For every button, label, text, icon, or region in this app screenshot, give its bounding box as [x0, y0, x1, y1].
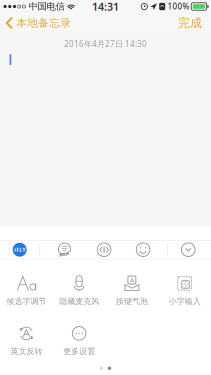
button[interactable]: 小: [158, 259, 211, 309]
staticText: 英文反转: [10, 346, 42, 356]
staticText: 100%: [167, 1, 189, 12]
button[interactable]: 消息: [40, 241, 89, 259]
button[interactable]: 候选字调节: [0, 259, 53, 309]
staticText: A: [130, 276, 134, 284]
button[interactable]: 隐藏麦克风: [53, 259, 106, 309]
button[interactable]: 讯飞输入法: [0, 241, 39, 259]
staticText: 14:31: [92, 0, 119, 14]
button[interactable]: 更多设置: [53, 309, 106, 359]
staticText: 按键气泡: [116, 296, 148, 306]
button[interactable]: 光标移动: [89, 241, 119, 259]
staticText: 完成: [178, 16, 202, 30]
button[interactable]: 本地备忘录: [0, 13, 71, 33]
staticText: 本地备忘录: [16, 16, 71, 29]
button[interactable]: A: [105, 259, 158, 309]
staticText: 小字输入: [169, 296, 201, 306]
button[interactable]: 英文反转: [0, 309, 53, 359]
staticText: 2016年4月27日 14:30: [64, 38, 147, 49]
staticText: 更多设置: [63, 346, 95, 356]
staticText: 中国电信: [28, 1, 64, 12]
staticText: 隐藏麦克风: [59, 296, 99, 306]
button[interactable]: 收起键盘: [168, 241, 209, 259]
button[interactable]: 表情: [119, 241, 167, 259]
staticText: 候选字调节: [6, 296, 46, 306]
staticText: 小: [183, 281, 188, 288]
staticText: iFLY: [14, 246, 25, 253]
button[interactable]: 完成: [178, 13, 211, 33]
